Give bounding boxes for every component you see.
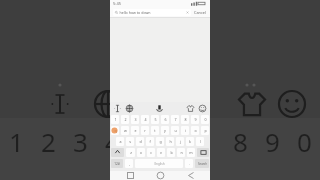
staticText: 7 [174, 117, 177, 122]
staticText: n [180, 150, 183, 155]
staticText: t [154, 128, 156, 133]
button[interactable]: f [146, 137, 154, 146]
staticText: f [149, 139, 151, 144]
staticText: u [174, 128, 177, 133]
staticText: 4 [144, 117, 147, 122]
staticText: 1 [9, 124, 24, 159]
button[interactable]: Cancel [193, 10, 207, 15]
staticText: 12# [114, 162, 120, 166]
button[interactable]: c [147, 148, 155, 157]
button[interactable]: 8 [181, 115, 189, 124]
staticText: x [140, 150, 142, 155]
staticText: l [200, 139, 201, 144]
staticText: r [144, 128, 146, 133]
button[interactable]: 5 [151, 115, 159, 124]
button[interactable]: m [187, 148, 195, 157]
button[interactable]: 9 [191, 115, 199, 124]
button[interactable]: hello how to down [113, 9, 191, 16]
button[interactable]: Backspace [197, 148, 209, 157]
staticText: e [134, 128, 137, 133]
staticText: 0 [204, 117, 207, 122]
button[interactable]: v [157, 148, 165, 157]
button[interactable]: 6 [161, 115, 169, 124]
button[interactable]: Voice input [155, 104, 164, 113]
button[interactable]: s [126, 137, 134, 146]
staticText: 6 [164, 117, 167, 122]
button[interactable]: x [137, 148, 145, 157]
button[interactable]: 4 [141, 115, 149, 124]
staticText: 8 [184, 117, 187, 122]
staticText: z [130, 150, 132, 155]
button[interactable]: a [116, 137, 124, 146]
staticText: j [180, 139, 181, 144]
button[interactable]: n [177, 148, 185, 157]
staticText: 0 [297, 124, 312, 159]
staticText: o [194, 128, 197, 133]
staticText: 5:45 [113, 1, 121, 6]
button[interactable]: l [196, 137, 204, 146]
staticText: Cancel [194, 10, 206, 15]
staticText: h [169, 139, 172, 144]
staticText: 3 [134, 117, 137, 122]
staticText: q [114, 128, 117, 133]
staticText: d [139, 139, 142, 144]
staticText: p [204, 128, 207, 133]
button[interactable]: Shift [111, 148, 124, 157]
button[interactable]: Language [125, 104, 134, 113]
button[interactable]: i [181, 126, 189, 135]
staticText: 5 [154, 117, 157, 122]
button[interactable]: 3 [131, 115, 139, 124]
button[interactable]: 1 [111, 115, 119, 124]
button[interactable]: t [151, 126, 159, 135]
staticText: 8 [233, 124, 248, 159]
button[interactable]: e [131, 126, 139, 135]
button[interactable]: 0 [201, 115, 209, 124]
staticText: k [189, 139, 191, 144]
button[interactable]: Theme [186, 104, 195, 113]
staticText: y [164, 128, 166, 133]
button[interactable]: j [176, 137, 184, 146]
button[interactable]: English [135, 159, 183, 168]
button[interactable]: g [156, 137, 164, 146]
button[interactable]: 12# [111, 159, 123, 168]
staticText: c [150, 150, 152, 155]
button[interactable]: d [136, 137, 144, 146]
button[interactable]: 2 [121, 115, 129, 124]
staticText: 1 [114, 117, 117, 122]
staticText: 2 [41, 124, 56, 159]
button[interactable]: Home [150, 171, 170, 180]
staticText: 9 [265, 124, 280, 159]
button[interactable]: Back [180, 171, 200, 180]
staticText: , [129, 161, 130, 166]
staticText: Search [198, 162, 207, 166]
button[interactable]: Search [195, 159, 209, 168]
button[interactable]: y [161, 126, 169, 135]
staticText: hello how to down [119, 10, 151, 15]
button[interactable]: b [167, 148, 175, 157]
staticText: g [159, 139, 162, 144]
button[interactable]: z [126, 148, 135, 157]
staticText: v [160, 150, 162, 155]
button[interactable]: h [166, 137, 174, 146]
staticText: s [129, 139, 131, 144]
button[interactable]: p [201, 126, 209, 135]
button[interactable]: u [171, 126, 179, 135]
staticText: . [189, 161, 190, 166]
button[interactable]: 7 [171, 115, 179, 124]
staticText: 2 [124, 117, 127, 122]
staticText: b [170, 150, 173, 155]
button[interactable]: Emoji [198, 104, 207, 113]
button[interactable]: w [121, 126, 129, 135]
staticText: w [124, 128, 127, 133]
staticText: i [185, 128, 186, 133]
button[interactable]: Text cursor [113, 104, 122, 113]
button[interactable]: q [111, 126, 119, 135]
button[interactable]: , [125, 159, 133, 168]
button[interactable]: Recents [120, 171, 140, 180]
button[interactable]: r [141, 126, 149, 135]
button[interactable]: k [186, 137, 194, 146]
staticText: m [189, 150, 193, 155]
button[interactable]: o [191, 126, 199, 135]
staticText: 4 [105, 124, 120, 159]
